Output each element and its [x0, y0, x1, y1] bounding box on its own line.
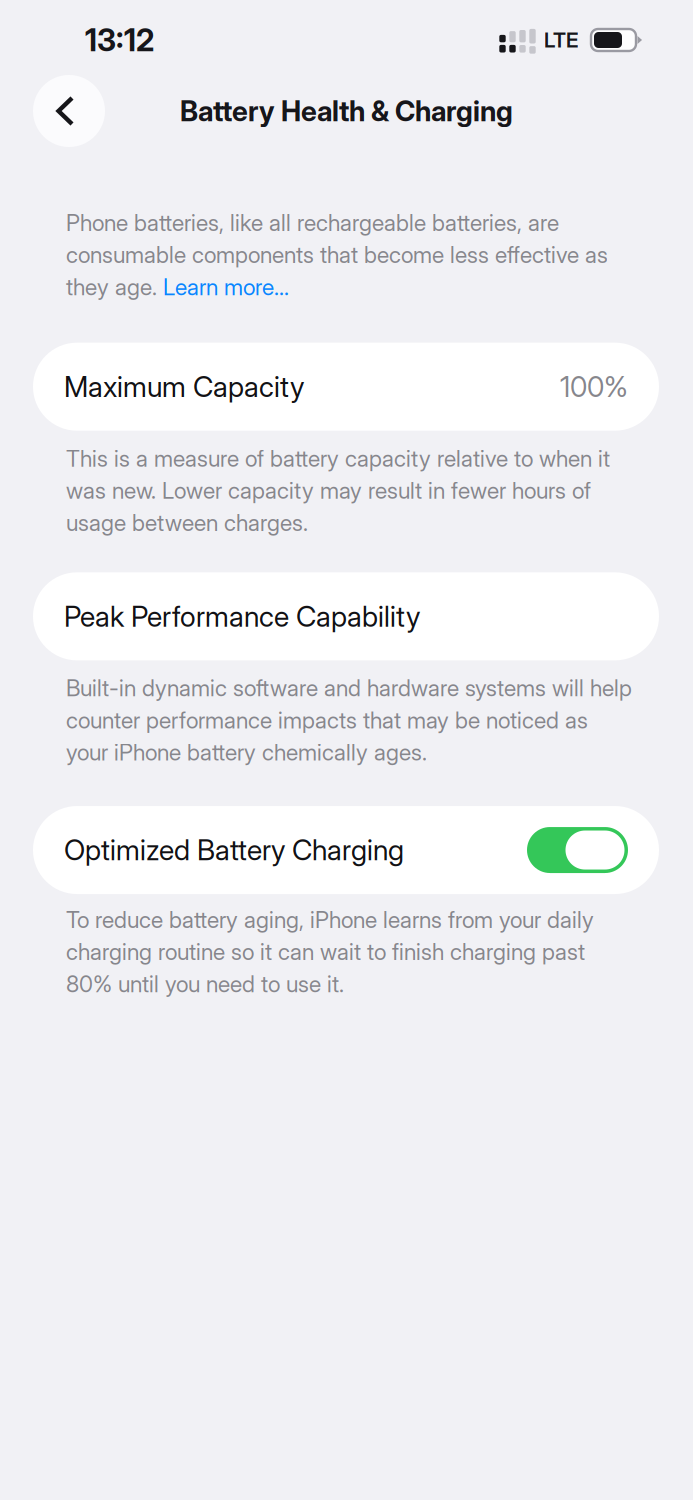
staticText: Built-in dynamic software and hardware s… — [66, 674, 632, 766]
button[interactable]: Optimized Battery Charging — [527, 827, 628, 873]
staticText: Phone batteries, like all rechargeable b… — [66, 209, 608, 301]
staticText: Peak Performance Capability — [64, 599, 420, 633]
staticText: 100% — [560, 370, 628, 404]
staticText: Battery Health & Charging — [180, 94, 513, 128]
staticText: LTE — [544, 27, 578, 52]
staticText: Maximum Capacity — [64, 370, 304, 404]
staticText: Optimized Battery Charging — [64, 833, 404, 867]
staticText: This is a measure of battery capacity re… — [66, 445, 610, 536]
staticText: To reduce battery aging, iPhone learns f… — [66, 906, 594, 998]
button[interactable]: Back — [33, 75, 105, 151]
button[interactable]: Peak Performance Capability — [33, 572, 659, 660]
staticText: 13:12 — [85, 21, 154, 58]
